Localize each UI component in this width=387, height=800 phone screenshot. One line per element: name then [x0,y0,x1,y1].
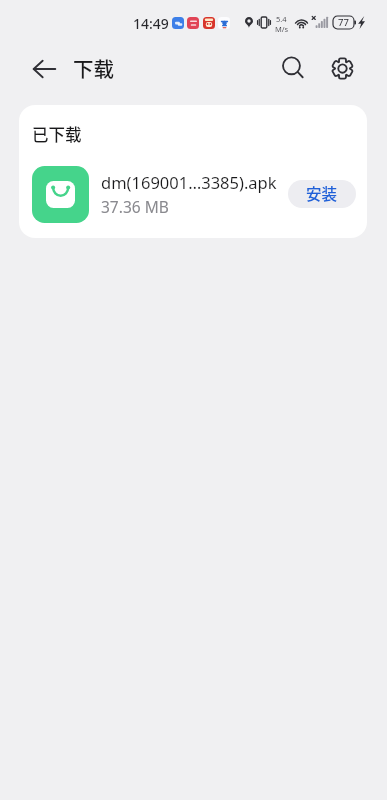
button[interactable]: 安装 [288,180,356,208]
staticText: M/s [275,24,289,34]
staticText: 下载 [73,53,114,83]
staticText: 已下载 [32,122,82,146]
staticText: 安装 [306,182,338,204]
button[interactable]: dm(169001…3385).apk [19,161,367,227]
button[interactable]: Search [271,46,315,90]
button[interactable]: Back [22,47,66,91]
staticText: 77 [338,16,349,29]
staticText: 14:49 [133,14,169,33]
staticText: 5.4 [276,14,287,24]
button[interactable]: Settings [321,47,364,90]
staticText: 37.36 MB [101,196,169,217]
staticText: dm(169001…3385).apk [101,171,277,193]
